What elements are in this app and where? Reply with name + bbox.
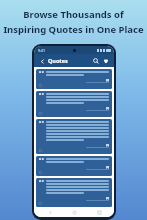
button[interactable]: Share xyxy=(39,112,42,115)
button[interactable]: Bookmark xyxy=(36,178,112,207)
staticText: Browse Thousands of xyxy=(23,8,124,21)
button[interactable]: Share xyxy=(39,84,42,87)
button[interactable]: Bookmark xyxy=(105,165,109,169)
button[interactable]: Home xyxy=(65,208,83,217)
button[interactable]: Bookmark xyxy=(36,69,112,89)
button[interactable]: Bookmark xyxy=(36,91,112,117)
button[interactable]: Bookmark xyxy=(36,119,112,154)
button[interactable]: Bookmark xyxy=(105,196,109,200)
staticText: Quotes xyxy=(48,57,68,64)
button[interactable]: Recent apps xyxy=(90,208,108,217)
button[interactable]: Share xyxy=(39,149,42,152)
button[interactable]: Bookmark xyxy=(105,78,109,82)
button[interactable]: Back xyxy=(38,57,46,65)
staticText: 9:41 xyxy=(38,48,45,53)
button[interactable]: Bookmark xyxy=(36,156,112,176)
button[interactable]: Favorites xyxy=(101,56,110,65)
button[interactable]: Bookmark xyxy=(105,106,109,110)
button[interactable]: Share xyxy=(39,202,42,205)
staticText: Inspiring Quotes in One Place xyxy=(3,23,144,36)
button[interactable]: Back xyxy=(41,208,59,217)
button[interactable]: Bookmark xyxy=(105,143,109,147)
button[interactable]: Search xyxy=(91,56,100,65)
button[interactable]: Share xyxy=(39,171,42,174)
